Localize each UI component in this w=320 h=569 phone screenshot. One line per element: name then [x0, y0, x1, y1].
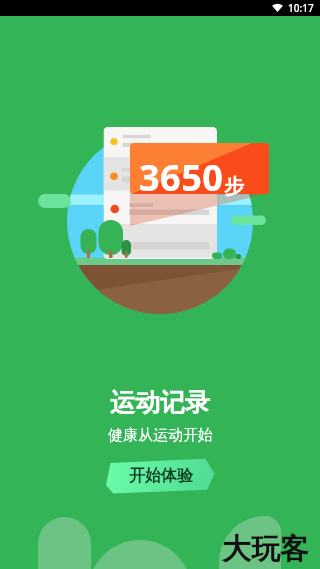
staticText: 大玩客	[222, 531, 309, 568]
staticText: 开始体验	[129, 466, 193, 486]
staticText: 3650	[139, 153, 224, 202]
button[interactable]: 开始体验	[104, 456, 216, 496]
staticText: 步	[224, 174, 244, 199]
staticText: 运动记录	[110, 387, 210, 418]
staticText: 健康从运动开始	[108, 426, 213, 445]
staticText: 10:17	[288, 1, 314, 15]
